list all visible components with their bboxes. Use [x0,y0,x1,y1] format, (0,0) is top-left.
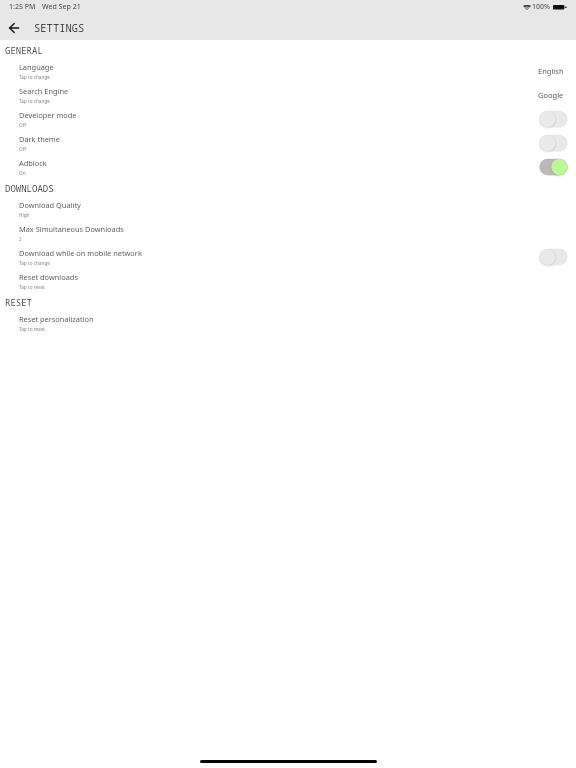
button[interactable]: Language [0,59,576,83]
button[interactable]: Back [0,17,28,39]
staticText: Search Engine [19,86,69,96]
staticText: Off [19,146,26,152]
staticText: SETTINGS [34,21,85,35]
staticText: 100% [532,2,550,12]
staticText: Tap to reset [19,284,45,290]
button[interactable]: Toggle off [536,246,568,268]
button[interactable]: Developer mode [0,107,576,131]
staticText: GENERAL [5,44,43,56]
button[interactable]: Search Engine [0,83,576,107]
staticText: DOWNLOADS [5,182,54,194]
staticText: Tap to change [19,98,50,104]
staticText: Developer mode [19,110,77,120]
button[interactable]: Toggle on [536,156,568,178]
staticText: 2 [19,236,22,242]
staticText: High [19,212,30,218]
button[interactable]: Download Quality [0,197,576,221]
staticText: Reset personalization [19,314,94,324]
button[interactable]: Toggle off [536,132,568,154]
staticText: Wed Sep 21 [42,2,81,12]
staticText: Language [19,62,54,72]
staticText: Tap to change [19,74,50,80]
staticText: 1:25 PM [9,2,36,12]
button[interactable]: Dark theme [0,131,576,155]
button[interactable]: Download while on mobile network [0,245,576,269]
staticText: Tap to change [19,260,50,266]
staticText: RESET [5,296,33,308]
staticText: Off [19,122,26,128]
button[interactable]: Max Simultaneous Downloads [0,221,576,245]
staticText: English [538,66,564,76]
staticText: Download Quality [19,200,81,210]
button[interactable]: Reset personalization [0,311,576,335]
button[interactable]: Reset downloads [0,269,576,293]
staticText: On [19,170,26,176]
staticText: Max Simultaneous Downloads [19,224,124,234]
button[interactable]: Toggle off [536,108,568,130]
button[interactable]: Adblock [0,155,576,179]
staticText: Reset downloads [19,272,78,282]
staticText: Download while on mobile network [19,248,142,258]
staticText: Dark theme [19,134,60,144]
staticText: Tap to reset [19,326,45,332]
staticText: Adblock [19,158,47,168]
staticText: Google [538,90,564,100]
